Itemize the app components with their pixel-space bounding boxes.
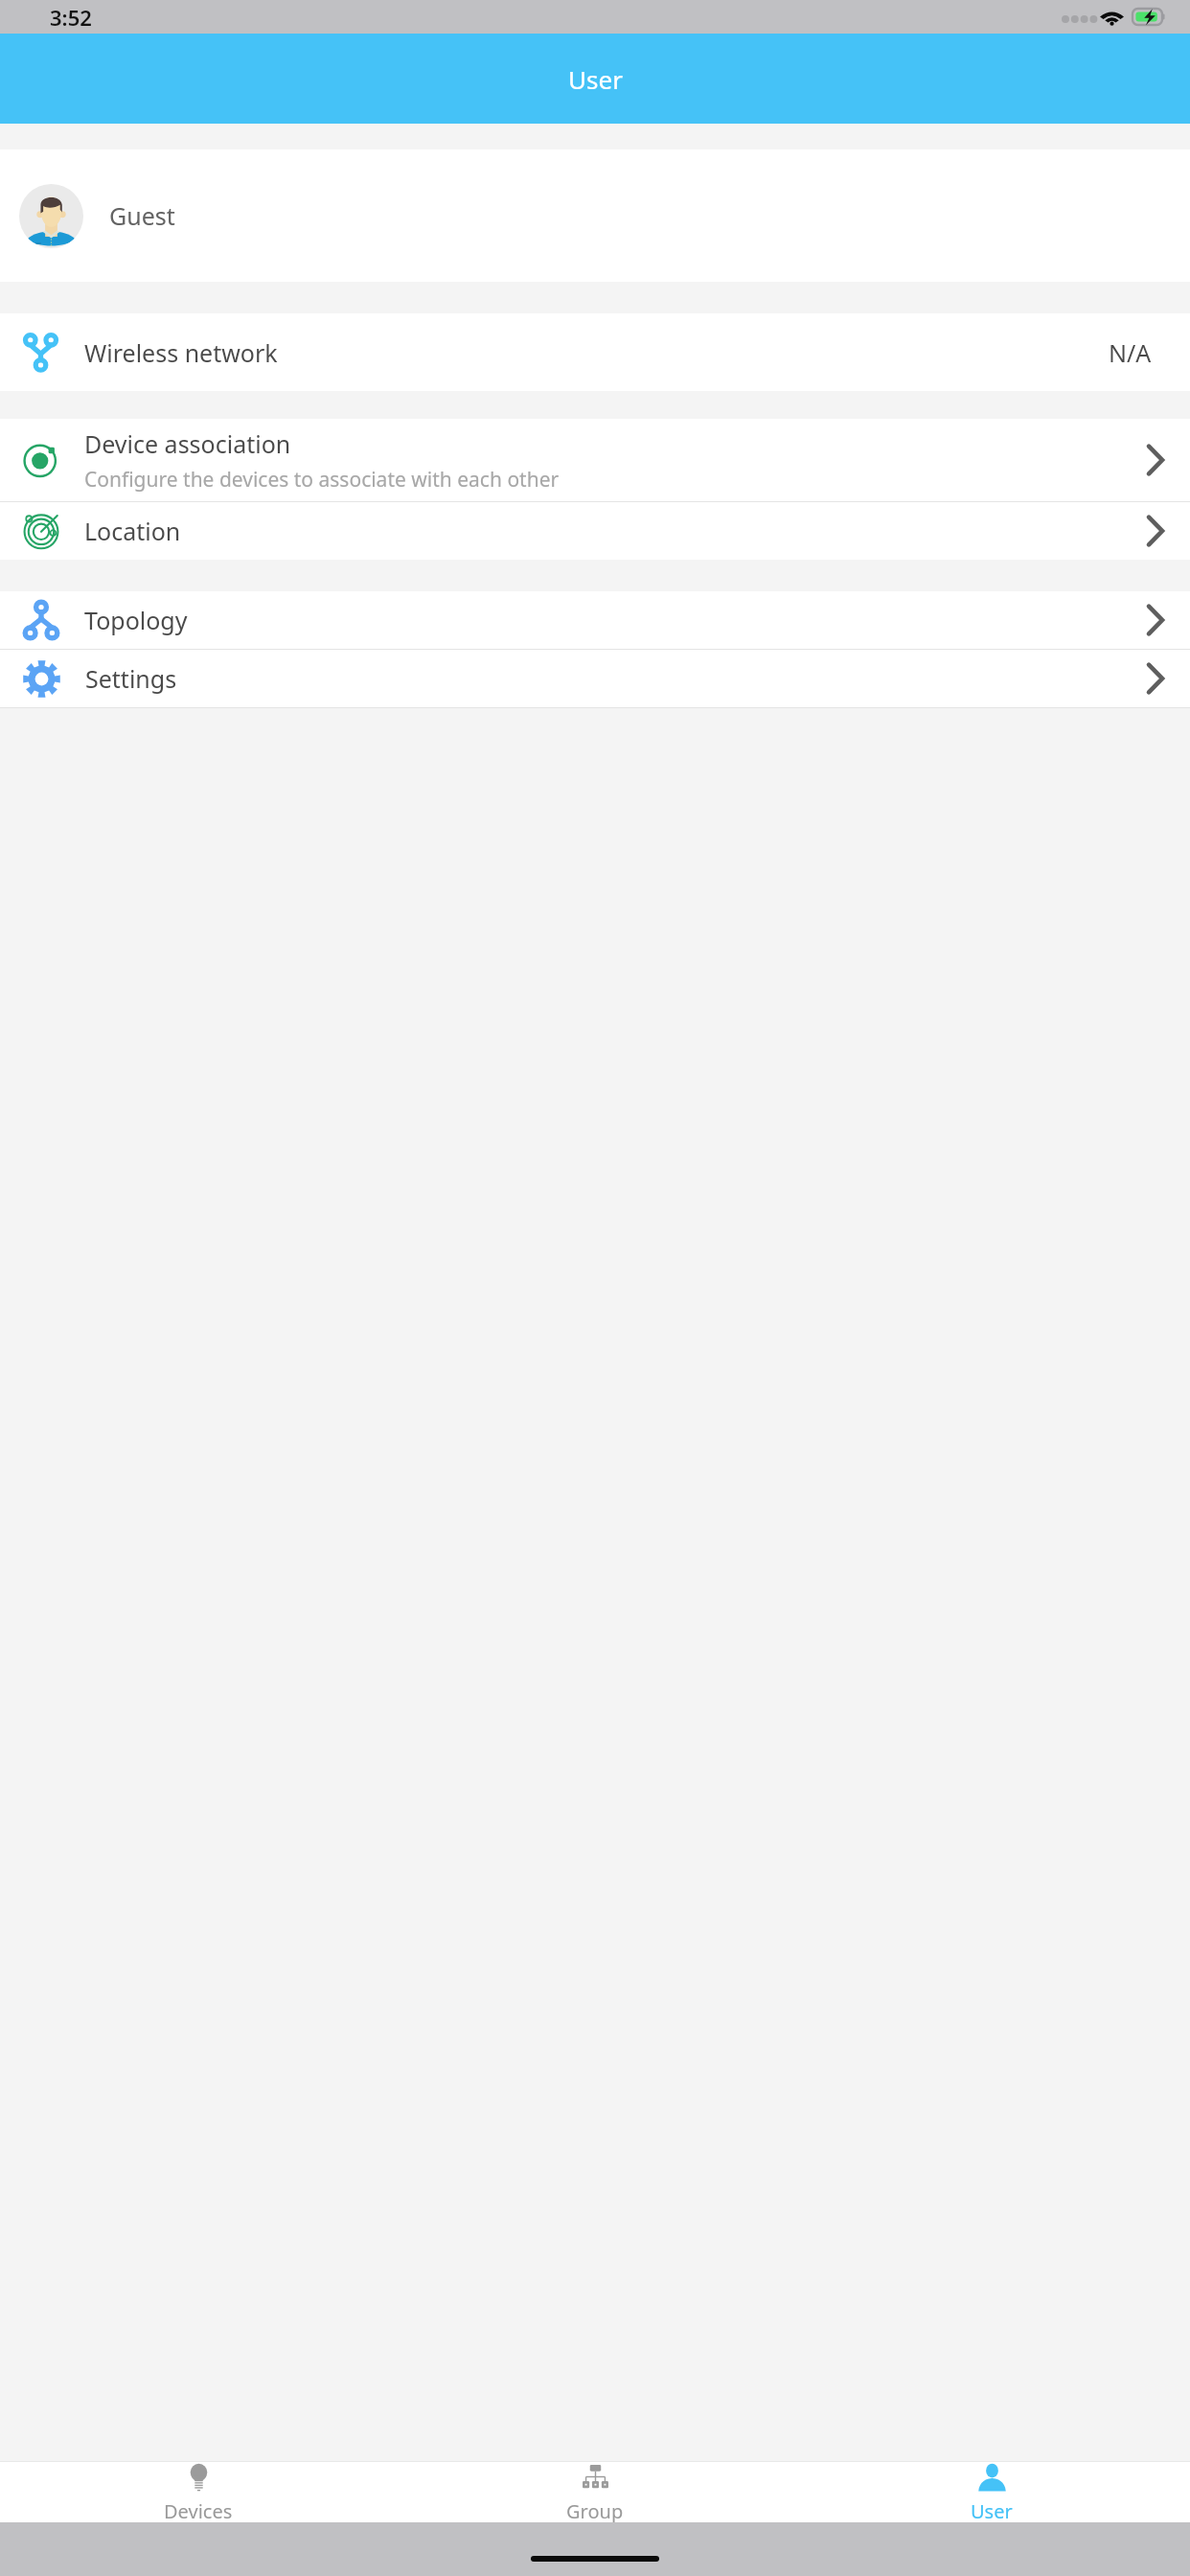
- button[interactable]: Group: [397, 2462, 793, 2522]
- button[interactable]: Wireless network: [0, 313, 1190, 391]
- button[interactable]: User: [793, 2462, 1190, 2522]
- staticText: Group: [566, 2498, 624, 2522]
- staticText: Topology: [84, 604, 188, 636]
- staticText: Device association: [84, 427, 291, 460]
- button[interactable]: Location: [0, 502, 1190, 560]
- staticText: Settings: [85, 662, 177, 695]
- button[interactable]: Topology: [0, 591, 1190, 649]
- staticText: Devices: [164, 2498, 233, 2522]
- staticText: 3:52: [50, 3, 92, 32]
- staticText: User: [568, 62, 623, 96]
- staticText: Configure the devices to associate with …: [84, 466, 560, 494]
- button[interactable]: Device association: [0, 419, 1190, 501]
- button[interactable]: Guest: [0, 149, 1190, 282]
- staticText: N/A: [1109, 336, 1152, 369]
- button[interactable]: Devices: [0, 2462, 397, 2522]
- button[interactable]: Settings: [0, 650, 1190, 707]
- staticText: Location: [84, 515, 181, 547]
- staticText: User: [971, 2498, 1013, 2522]
- staticText: Guest: [109, 199, 175, 232]
- staticText: Wireless network: [84, 336, 278, 369]
